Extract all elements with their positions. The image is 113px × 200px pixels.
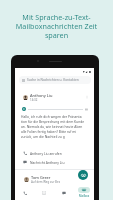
button[interactable]: Suche in Nachrichten u. Kontakten <box>19 76 91 84</box>
button[interactable]: Tom Greer <box>24 175 90 184</box>
staticText: Auf dem Weg zur Bes <box>31 180 61 184</box>
button[interactable]: Nachricht Anthony Liu <box>23 159 88 165</box>
staticText: Anthony Liu <box>30 93 53 98</box>
button[interactable]: Kontakte <box>54 185 74 200</box>
staticText: Mit Sprache-zu-Text-Mailboxnachrichten Z… <box>9 12 104 40</box>
staticText: Suche in Nachrichten u. Kontakten <box>27 78 79 82</box>
staticText: Tom Greer <box>31 175 51 180</box>
button[interactable]: Abspielen <box>22 107 26 111</box>
staticText: Nachricht Anthony Liu <box>30 160 65 164</box>
button[interactable]: Anrufe <box>15 185 34 200</box>
button[interactable]: Anthony Liu <box>23 93 89 101</box>
button[interactable]: Anthony Liu anrufen <box>23 150 88 156</box>
button[interactable]: Neue Nachricht aufnehmen <box>78 170 88 180</box>
staticText: 14:32 <box>30 98 38 101</box>
button[interactable]: Weitere Optionen <box>85 95 89 99</box>
staticText: Anthony Liu anrufen <box>30 151 62 155</box>
staticText: Mailbox <box>79 194 90 198</box>
button[interactable]: Tastenfeld <box>34 185 54 200</box>
staticText: Hallo, ich rufe dich wegen der Präsenta … <box>21 114 87 139</box>
button[interactable]: Mailbox <box>74 185 94 200</box>
